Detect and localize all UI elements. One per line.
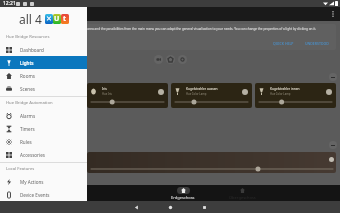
staticText: Timers	[20, 126, 35, 132]
staticText: Scenes	[20, 86, 35, 92]
button[interactable]: Collapse section	[329, 141, 337, 149]
button[interactable]: Toggle Kugelstrahler aussen	[242, 89, 248, 95]
staticText: 12:21	[3, 0, 16, 7]
staticText: Rules	[20, 139, 32, 145]
staticText: Hue Iris	[102, 92, 112, 96]
staticText: Kugelstrahler innen	[270, 87, 300, 91]
staticText: Lights	[20, 60, 34, 66]
button[interactable]: Collapse section	[329, 73, 337, 81]
staticText: Alarms	[20, 113, 36, 119]
button[interactable]: Here you see all of your lights. By choo…	[4, 24, 336, 50]
button[interactable]: Help	[178, 55, 187, 64]
staticText: UNDERSTOOD	[305, 41, 329, 46]
button[interactable]: Rooms	[0, 69, 87, 82]
button[interactable]: Back	[119, 201, 153, 213]
staticText: Local Features	[6, 166, 35, 172]
staticText: Obergeschoss	[229, 195, 256, 200]
button[interactable]: Device Events	[0, 188, 87, 201]
button[interactable]: Iris	[87, 83, 168, 108]
staticText: Device Events	[20, 192, 50, 198]
button[interactable]: Toggle Iris	[158, 89, 164, 95]
staticText: all 4	[19, 11, 42, 27]
button[interactable]: My Actions	[0, 175, 87, 188]
staticText: My Actions	[20, 179, 44, 185]
button[interactable]: Shape	[166, 55, 175, 64]
staticText: Dashboard	[20, 47, 44, 53]
staticText: t	[63, 14, 67, 24]
button[interactable]: Alarms	[0, 109, 87, 122]
staticText: QUICK HELP	[273, 41, 294, 46]
staticText: Here you see all of your lights. By choo…	[9, 27, 331, 31]
button[interactable]: Scenes	[0, 82, 87, 95]
button[interactable]: Presets	[154, 55, 163, 64]
button[interactable]: Rules	[0, 135, 87, 148]
staticText: Hue Bridge Resources	[6, 34, 50, 40]
button[interactable]: Accessories	[0, 148, 87, 161]
button[interactable]: Timers	[0, 122, 87, 135]
staticText: Hue Bridge Automation	[6, 100, 53, 106]
staticText: Kugelstrahler aussen	[186, 87, 218, 91]
button[interactable]: Dashboard	[0, 43, 87, 56]
staticText: U	[54, 14, 60, 24]
staticText: Iris	[102, 87, 107, 91]
button[interactable]: Toggle group	[329, 157, 334, 162]
button[interactable]: Obergeschoss	[225, 187, 260, 200]
button[interactable]: More options	[327, 8, 339, 20]
button[interactable]: QUICK HELP	[271, 40, 296, 47]
staticText: Hue Color Lamp	[186, 92, 207, 96]
staticText: Hue Color Lamp	[270, 92, 291, 96]
staticText: Erdgeschoss	[171, 195, 195, 200]
staticText: ✕	[46, 15, 52, 23]
button[interactable]: UNDERSTOOD	[303, 40, 331, 47]
button[interactable]: Erdgeschoss	[167, 187, 199, 200]
button[interactable]: Toggle Kugelstrahler innen	[326, 89, 332, 95]
button[interactable]: Recents	[187, 201, 221, 213]
staticText: Accessories	[20, 152, 45, 158]
button[interactable]: Kugelstrahler aussen	[171, 83, 252, 108]
button[interactable]: Kugelstrahler innen	[255, 83, 336, 108]
button[interactable]: Lights	[0, 56, 87, 69]
button[interactable]: Home	[153, 201, 187, 213]
button[interactable]: Toggle group	[87, 152, 336, 173]
staticText: Rooms	[20, 73, 35, 79]
